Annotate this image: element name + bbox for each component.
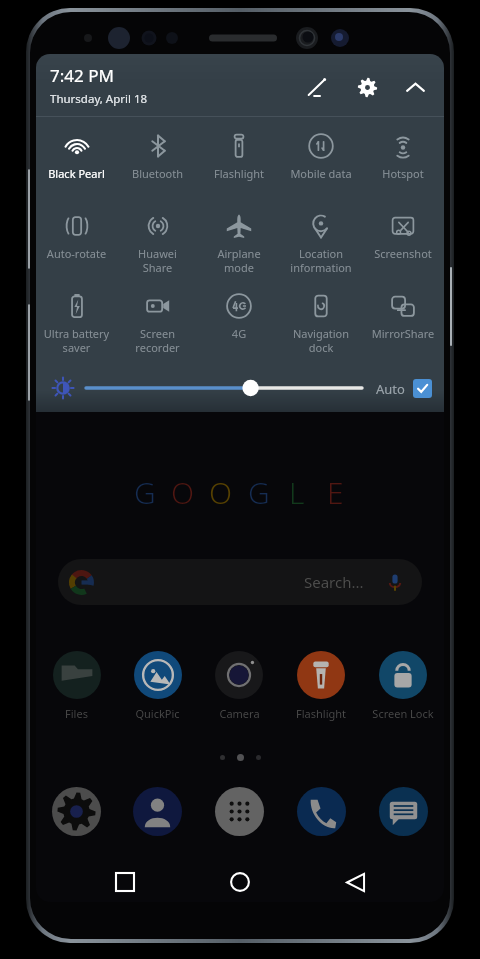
staticText: Huawei Share [117, 246, 198, 275]
staticText: Auto [376, 380, 405, 398]
staticText: Screen Lock [372, 706, 434, 721]
button[interactable]: Bluetooth [117, 123, 198, 203]
staticText: Hotspot [362, 166, 444, 181]
button[interactable]: Phone [280, 787, 362, 836]
button[interactable]: Search [58, 559, 422, 605]
staticText: O [171, 472, 195, 513]
button[interactable]: Edit [298, 68, 336, 106]
staticText: Airplane mode [198, 246, 280, 275]
staticText: Auto-rotate [36, 246, 117, 261]
staticText: Bluetooth [117, 166, 198, 181]
button[interactable]: Brightness [48, 373, 78, 403]
staticText: Thursday, April 18 [50, 91, 148, 107]
staticText: Black Pearl [36, 166, 117, 181]
staticText: L [289, 472, 305, 513]
staticText: 7:42 PM [50, 64, 114, 87]
staticText: QuickPic [135, 706, 180, 721]
button[interactable]: Settings [36, 787, 117, 836]
button[interactable]: Airplane mode [198, 203, 280, 283]
button[interactable]: Back [329, 860, 381, 904]
staticText: Search... [304, 572, 364, 592]
button[interactable]: Settings [348, 68, 386, 106]
staticText: Flashlight [296, 706, 346, 721]
button[interactable]: Screen Lock [362, 649, 444, 723]
button[interactable]: Flashlight [198, 123, 280, 203]
button[interactable]: Navigation dock [280, 283, 362, 363]
button[interactable]: Collapse [396, 68, 434, 106]
staticText: Navigation dock [280, 326, 362, 355]
button[interactable]: Apps [198, 787, 280, 836]
button[interactable]: Black Pearl [36, 123, 117, 203]
staticText: 4G [198, 326, 280, 341]
button[interactable]: Auto [376, 379, 432, 398]
staticText: G [248, 472, 270, 513]
staticText: E [327, 472, 344, 513]
button[interactable]: Screenshot [362, 203, 444, 283]
button[interactable]: MirrorShare [362, 283, 444, 363]
staticText: Screen recorder [117, 326, 198, 355]
staticText: Flashlight [198, 166, 280, 181]
button[interactable]: 4G [198, 283, 280, 363]
staticText: Files [65, 706, 88, 721]
button[interactable]: Ultra battery saver [36, 283, 117, 363]
button[interactable]: Hotspot [362, 123, 444, 203]
staticText: Mobile data [280, 166, 362, 181]
staticText: Location information [280, 246, 362, 275]
button[interactable]: Location information [280, 203, 362, 283]
button[interactable]: Screen recorder [117, 283, 198, 363]
button[interactable]: Files [36, 649, 117, 723]
staticText: Ultra battery saver [36, 326, 117, 355]
button[interactable]: Mobile data [280, 123, 362, 203]
staticText: O [209, 472, 233, 513]
button[interactable]: Camera [198, 649, 280, 723]
staticText: Camera [219, 706, 260, 721]
button[interactable]: Huawei Share [117, 203, 198, 283]
staticText: Screenshot [362, 246, 444, 261]
button[interactable]: Messages [362, 787, 444, 836]
staticText: MirrorShare [362, 326, 444, 341]
button[interactable]: QuickPic [117, 649, 198, 723]
button[interactable]: Brightness slider [84, 373, 364, 403]
button[interactable]: Flashlight [280, 649, 362, 723]
button[interactable]: Contacts [117, 787, 198, 836]
button[interactable]: Home [214, 860, 266, 904]
staticText: G [134, 472, 156, 513]
button[interactable]: Recents [99, 860, 151, 904]
button[interactable]: Auto-rotate [36, 203, 117, 283]
